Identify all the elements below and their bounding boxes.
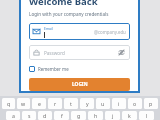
button[interactable]: h: [88, 111, 103, 120]
staticText: t: [70, 100, 72, 107]
staticText: i: [118, 100, 120, 107]
button[interactable]: f: [54, 111, 69, 120]
staticText: e: [38, 100, 41, 107]
button[interactable]: k: [122, 111, 137, 120]
button[interactable]: Remember me: [29, 65, 69, 73]
button[interactable]: q: [2, 98, 15, 109]
button[interactable]: i: [112, 98, 126, 109]
staticText: r: [54, 100, 57, 107]
staticText: a: [12, 112, 15, 119]
button[interactable]: o: [128, 98, 142, 109]
staticText: h: [94, 112, 98, 119]
button[interactable]: l: [139, 111, 154, 120]
staticText: LOGIN: [72, 81, 88, 88]
staticText: Welcome Back: [29, 0, 98, 8]
button[interactable]: r: [48, 98, 62, 109]
button[interactable]: g: [71, 111, 86, 120]
button[interactable]: y: [80, 98, 94, 109]
staticText: l: [146, 112, 148, 119]
staticText: g: [77, 112, 81, 119]
staticText: q: [7, 100, 11, 107]
staticText: f: [61, 112, 63, 119]
button[interactable]: d: [38, 111, 52, 120]
button[interactable]: t: [64, 98, 78, 109]
staticText: p: [149, 100, 153, 107]
staticText: @company.edu: [94, 29, 126, 35]
staticText: Remember me: [38, 66, 69, 72]
button[interactable]: w: [17, 98, 30, 109]
staticText: s: [28, 112, 31, 119]
button[interactable]: LOGIN: [29, 78, 130, 91]
staticText: j: [112, 112, 114, 119]
button[interactable]: p: [144, 98, 158, 109]
button[interactable]: j: [105, 111, 120, 120]
staticText: k: [128, 112, 131, 119]
staticText: Login with your company credentials: [29, 11, 109, 17]
staticText: o: [133, 100, 137, 107]
staticText: u: [101, 100, 105, 107]
staticText: y: [86, 100, 89, 107]
staticText: Email: [44, 26, 53, 31]
staticText: Password: [44, 50, 117, 56]
button[interactable]: Show password: [117, 48, 126, 57]
button[interactable]: u: [96, 98, 110, 109]
button[interactable]: Email: [29, 23, 130, 40]
button[interactable]: a: [6, 111, 20, 120]
button[interactable]: s: [22, 111, 36, 120]
staticText: d: [43, 112, 47, 119]
button[interactable]: Password: [29, 45, 130, 60]
staticText: w: [21, 100, 26, 107]
button[interactable]: e: [32, 98, 46, 109]
